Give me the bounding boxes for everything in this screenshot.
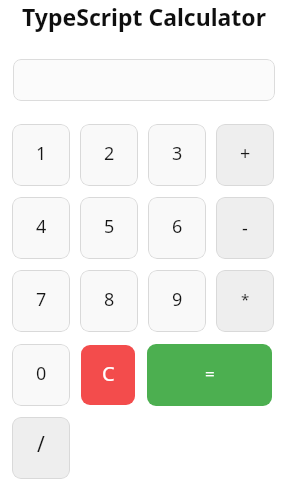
staticText: 4 <box>36 214 47 239</box>
staticText: 9 <box>172 287 183 312</box>
button[interactable]: C <box>81 345 135 405</box>
button[interactable]: 9 <box>148 270 206 332</box>
staticText: 6 <box>172 214 183 239</box>
button[interactable]: 0 <box>12 344 70 406</box>
staticText: * <box>241 289 250 309</box>
button[interactable]: * <box>216 270 274 332</box>
button[interactable]: / <box>12 417 70 479</box>
staticText: - <box>242 216 248 241</box>
staticText: TypeScript Calculator <box>0 1 288 32</box>
button[interactable] <box>13 59 275 101</box>
staticText: 8 <box>104 287 115 312</box>
button[interactable]: 2 <box>80 124 138 186</box>
staticText: 2 <box>104 141 115 166</box>
button[interactable]: 4 <box>12 197 70 259</box>
staticText: 0 <box>36 361 47 386</box>
button[interactable]: - <box>216 197 274 259</box>
staticText: 1 <box>36 141 47 166</box>
button[interactable]: 1 <box>12 124 70 186</box>
staticText: 5 <box>104 214 115 239</box>
button[interactable]: 5 <box>80 197 138 259</box>
staticText: 3 <box>172 141 183 166</box>
button[interactable]: 7 <box>12 270 70 332</box>
button[interactable]: + <box>216 124 274 186</box>
button[interactable]: 3 <box>148 124 206 186</box>
button[interactable]: 8 <box>80 270 138 332</box>
staticText: C <box>102 360 115 387</box>
button[interactable]: 6 <box>148 197 206 259</box>
staticText: + <box>240 141 251 166</box>
staticText: / <box>37 430 45 459</box>
staticText: 7 <box>36 287 47 312</box>
button[interactable]: = <box>147 344 272 406</box>
staticText: = <box>205 362 215 385</box>
